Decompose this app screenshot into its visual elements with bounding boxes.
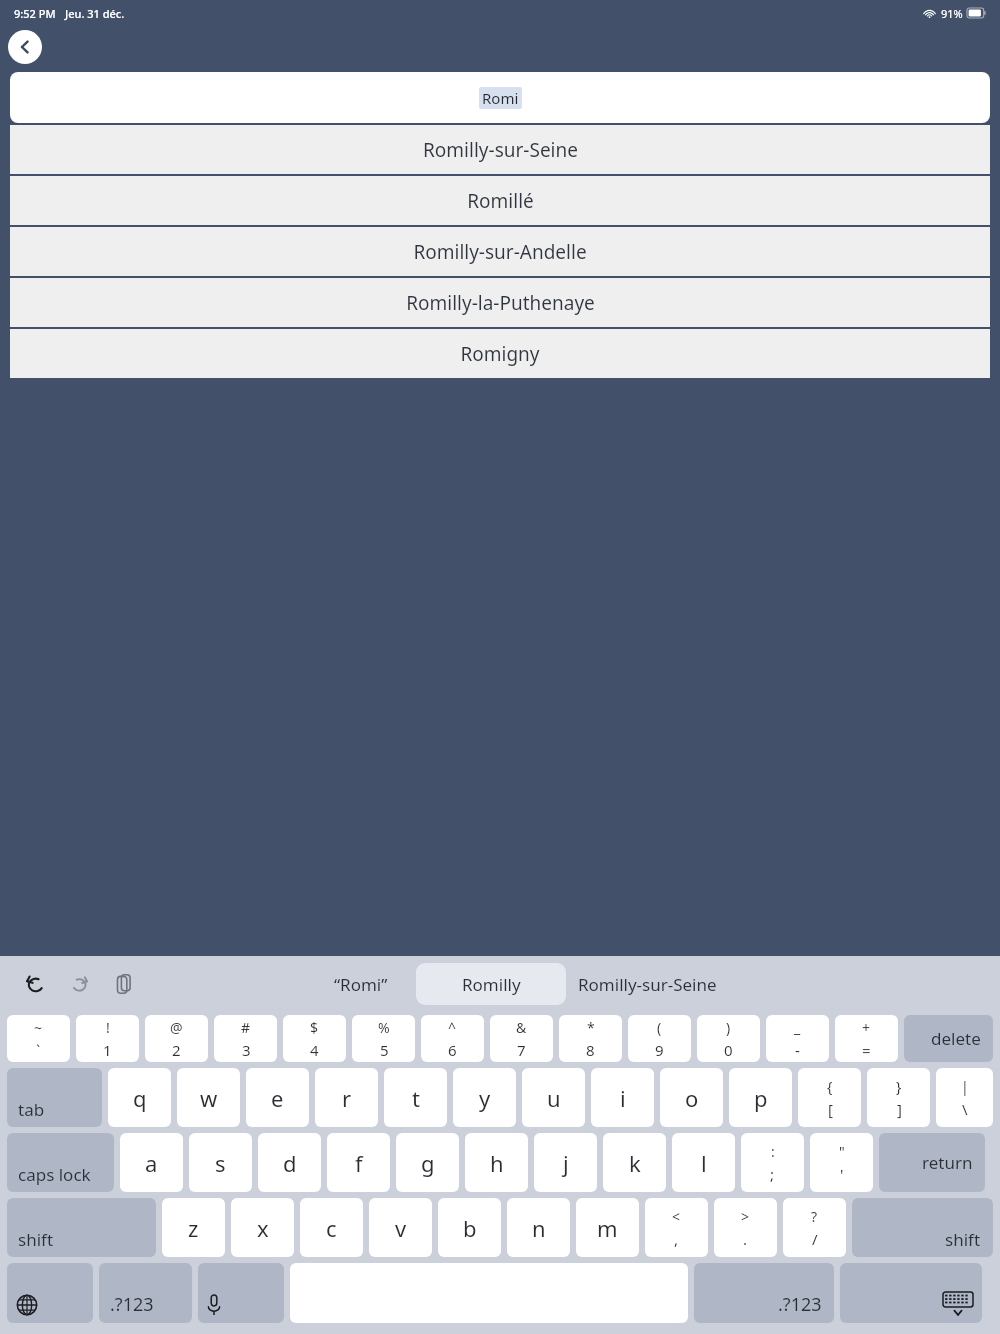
button[interactable]: Romilly-sur-Seine (578, 965, 717, 1004)
button[interactable]: " (810, 1133, 873, 1192)
staticText: > (741, 1207, 750, 1226)
staticText: .?123 (778, 1292, 822, 1317)
button[interactable]: Paste (106, 967, 140, 1001)
button[interactable]: return (879, 1133, 985, 1192)
button[interactable]: h (465, 1133, 528, 1192)
button[interactable]: % (352, 1015, 415, 1062)
button[interactable]: n (507, 1198, 570, 1257)
button[interactable]: j (534, 1133, 597, 1192)
button[interactable]: f (327, 1133, 390, 1192)
button[interactable]: u (522, 1068, 585, 1127)
staticText: q (133, 1083, 147, 1113)
button[interactable]: Hide keyboard (840, 1263, 982, 1323)
staticText: z (188, 1213, 199, 1243)
button[interactable]: | (936, 1068, 993, 1127)
button[interactable]: tab (7, 1068, 102, 1127)
staticText: .?123 (110, 1292, 154, 1317)
button[interactable]: q (108, 1068, 171, 1127)
button[interactable]: ~ (7, 1015, 70, 1062)
button[interactable]: z (162, 1198, 225, 1257)
button[interactable]: Romilly-sur-Seine (10, 125, 990, 174)
button[interactable]: Romillé (10, 176, 990, 225)
button[interactable]: c (300, 1198, 363, 1257)
button[interactable]: delete (904, 1015, 993, 1062)
button[interactable]: g (396, 1133, 459, 1192)
button[interactable]: $ (283, 1015, 346, 1062)
button[interactable]: ) (697, 1015, 760, 1062)
button[interactable]: : (741, 1133, 804, 1192)
staticText: shift (945, 1228, 981, 1251)
button[interactable]: Romigny (10, 329, 990, 378)
staticText: - (795, 1040, 800, 1060)
button[interactable]: l (672, 1133, 735, 1192)
button[interactable]: v (369, 1198, 432, 1257)
button[interactable]: ^ (421, 1015, 484, 1062)
staticText: 91% (941, 6, 963, 21)
button[interactable]: & (490, 1015, 553, 1062)
staticText: tab (18, 1098, 45, 1121)
button[interactable]: Romi (10, 72, 990, 123)
staticText: * (587, 1018, 595, 1037)
button[interactable]: > (714, 1198, 777, 1257)
button[interactable]: k (603, 1133, 666, 1192)
button[interactable]: Redo (62, 967, 96, 1001)
staticText: f (355, 1148, 363, 1178)
button[interactable]: a (120, 1133, 183, 1192)
button[interactable]: { (798, 1068, 861, 1127)
button[interactable]: o (660, 1068, 723, 1127)
staticText: y (479, 1083, 491, 1113)
staticText: & (516, 1018, 527, 1037)
button[interactable]: < (645, 1198, 708, 1257)
staticText: a (145, 1148, 158, 1178)
staticText: b (463, 1213, 477, 1243)
staticText: ; (770, 1164, 775, 1184)
button[interactable]: .?123 (99, 1263, 192, 1323)
button[interactable]: p (729, 1068, 792, 1127)
button[interactable]: m (576, 1198, 639, 1257)
staticText: 9:52 PM (14, 6, 56, 21)
staticText: 4 (310, 1040, 319, 1060)
button[interactable]: s (189, 1133, 252, 1192)
button[interactable]: .?123 (694, 1263, 834, 1323)
button[interactable]: y (453, 1068, 516, 1127)
button[interactable]: t (384, 1068, 447, 1127)
staticText: 7 (517, 1040, 526, 1060)
button[interactable]: r (315, 1068, 378, 1127)
button[interactable]: x (231, 1198, 294, 1257)
staticText: o (685, 1083, 699, 1113)
staticText: _ (794, 1018, 801, 1037)
button[interactable]: * (559, 1015, 622, 1062)
button[interactable]: b (438, 1198, 501, 1257)
button[interactable]: # (214, 1015, 277, 1062)
button[interactable]: ! (76, 1015, 139, 1062)
button[interactable]: i (591, 1068, 654, 1127)
button[interactable]: caps lock (7, 1133, 114, 1192)
button[interactable]: w (177, 1068, 240, 1127)
button[interactable]: @ (145, 1015, 208, 1062)
button[interactable]: “Romi” (320, 965, 402, 1004)
button[interactable]: Dictate (198, 1263, 284, 1323)
button[interactable]: ? (783, 1198, 846, 1257)
staticText: ) (726, 1018, 731, 1037)
button[interactable]: Romilly-la-Puthenaye (10, 278, 990, 327)
button[interactable]: Back (8, 30, 42, 64)
button[interactable]: Romilly (416, 963, 566, 1005)
button[interactable]: shift (852, 1198, 993, 1257)
button[interactable]: e (246, 1068, 309, 1127)
staticText: g (421, 1148, 435, 1178)
button[interactable]: } (867, 1068, 930, 1127)
button[interactable]: shift (7, 1198, 156, 1257)
button[interactable]: d (258, 1133, 321, 1192)
button[interactable]: Undo (18, 967, 52, 1001)
staticText: Romilly-sur-Seine (423, 137, 578, 163)
staticText: # (241, 1018, 251, 1037)
button[interactable]: _ (766, 1015, 829, 1062)
button[interactable]: + (835, 1015, 898, 1062)
button[interactable]: ( (628, 1015, 691, 1062)
staticText: Jeu. 31 déc. (65, 6, 125, 21)
staticText: Romigny (460, 341, 540, 367)
button[interactable]: Romilly-sur-Andelle (10, 227, 990, 276)
staticText: 8 (586, 1040, 595, 1060)
button[interactable]: Change keyboard language (7, 1263, 93, 1323)
